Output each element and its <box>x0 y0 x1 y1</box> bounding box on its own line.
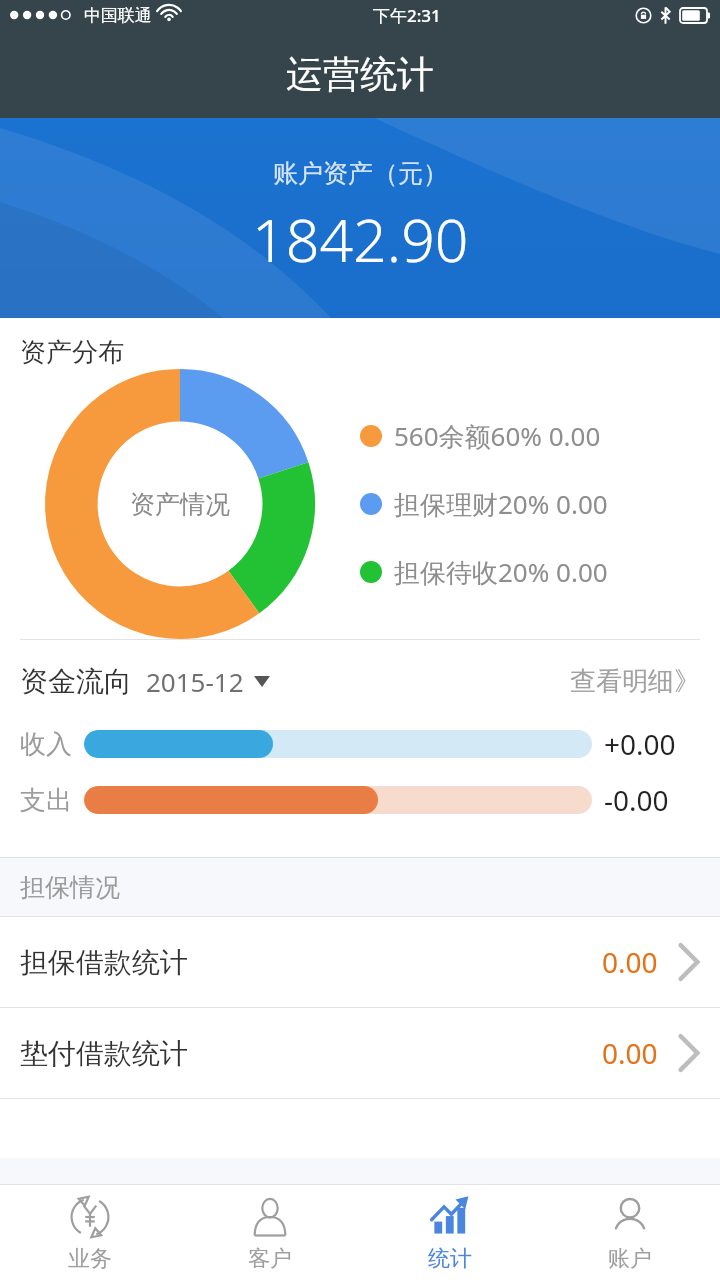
staticText: 中国联通 <box>84 5 152 26</box>
staticText: 0.00 <box>602 943 658 981</box>
button[interactable]: 垫付借款统计 <box>0 1008 720 1098</box>
staticText: 客户 <box>248 1245 292 1273</box>
staticText: 业务 <box>68 1245 112 1273</box>
staticText: 担保借款统计 <box>20 945 188 980</box>
staticText: 账户资产（元） <box>273 158 448 189</box>
staticText: 收入 <box>20 728 72 761</box>
staticText: 资产分布 <box>20 336 124 369</box>
staticText: 账户 <box>608 1245 652 1273</box>
button[interactable]: 统计 <box>360 1185 540 1280</box>
staticText: 0.00 <box>602 1034 658 1072</box>
button[interactable]: 资金流向 <box>20 664 700 699</box>
staticText: 统计 <box>428 1245 472 1273</box>
staticText: 支出 <box>20 784 72 817</box>
staticText: 担保情况 <box>20 872 120 903</box>
staticText: 运营统计 <box>286 51 434 98</box>
staticText: 担保理财20% 0.00 <box>394 486 608 522</box>
staticText: 2015-12 <box>146 664 244 699</box>
staticText: -0.00 <box>604 781 669 819</box>
staticText: +0.00 <box>604 725 676 763</box>
button[interactable]: 账户 <box>540 1185 720 1280</box>
staticText: 560余额60% 0.00 <box>394 418 601 454</box>
button[interactable]: 业务 <box>0 1185 180 1280</box>
staticText: 担保待收20% 0.00 <box>394 554 608 590</box>
button[interactable]: 查看明细》 <box>570 665 700 698</box>
button[interactable]: 担保借款统计 <box>0 917 720 1007</box>
button[interactable]: 客户 <box>180 1185 360 1280</box>
staticText: 下午2:31 <box>373 4 441 27</box>
staticText: 资产情况 <box>130 489 230 520</box>
staticText: 资金流向 <box>20 664 132 699</box>
staticText: 1842.90 <box>252 199 469 279</box>
staticText: 垫付借款统计 <box>20 1036 188 1071</box>
